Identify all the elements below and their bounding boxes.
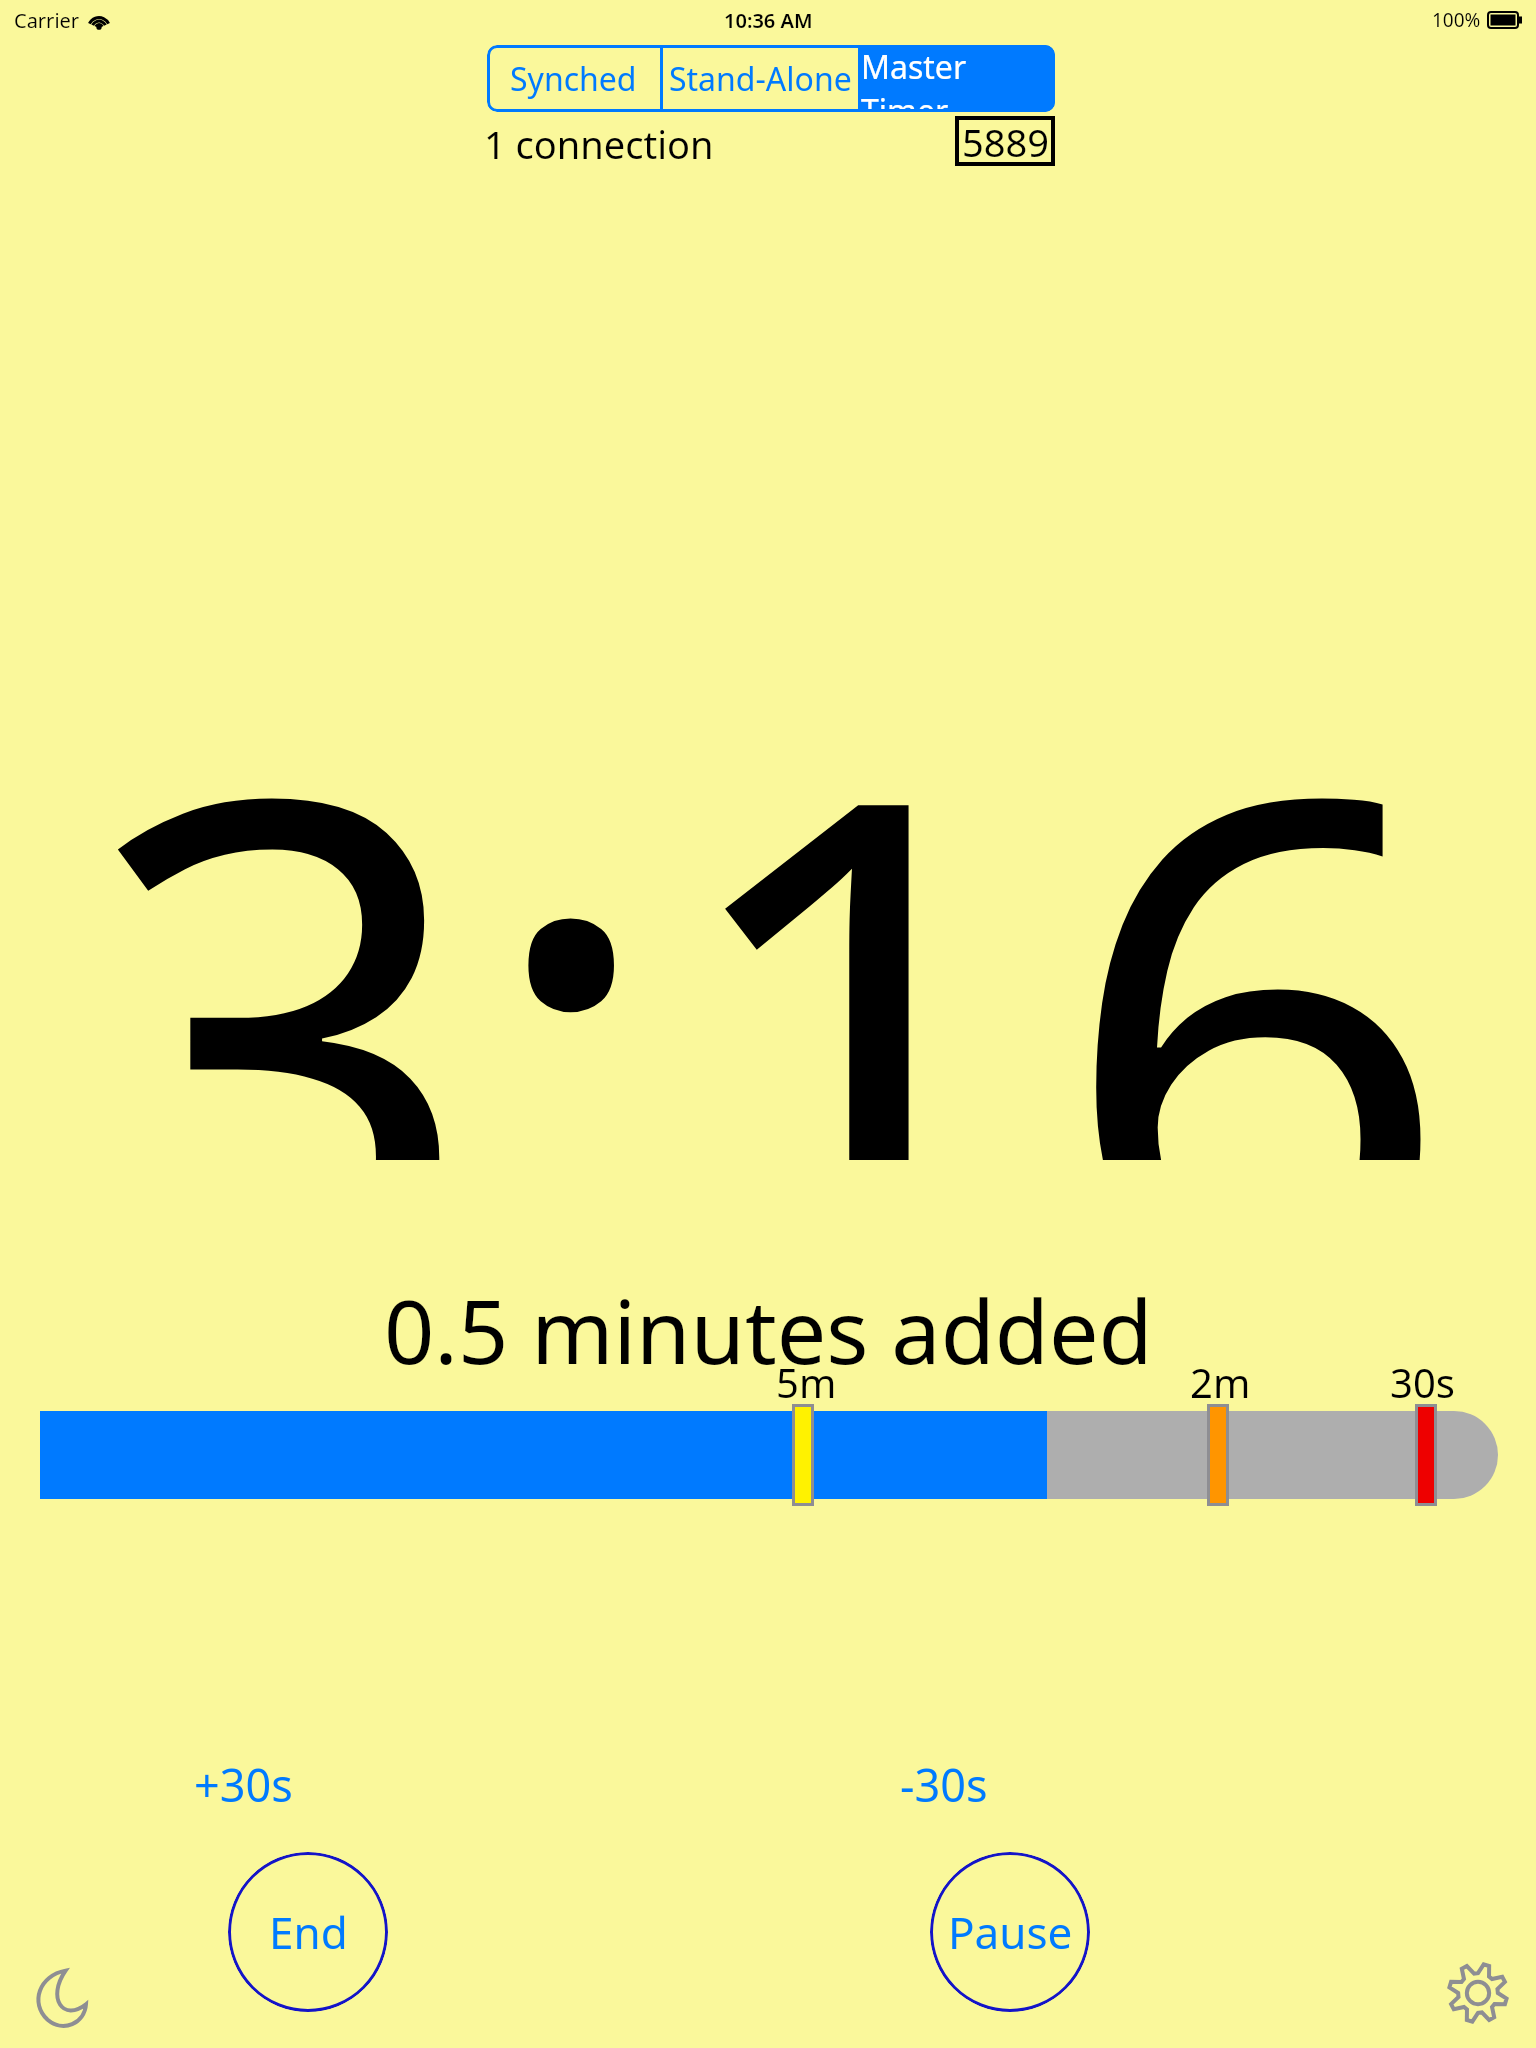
button[interactable]: +30s	[194, 1754, 293, 1815]
staticText: -30s	[900, 1754, 988, 1815]
staticText: 5m	[776, 1355, 837, 1409]
button[interactable]: Stand-Alone	[663, 45, 858, 112]
button[interactable]: Master Timer	[861, 45, 1055, 112]
button[interactable]: 5889	[955, 116, 1055, 166]
staticText: 0.5 minutes added	[384, 1270, 1153, 1390]
staticText: 3:16	[84, 560, 1453, 1160]
button[interactable]: Synched	[487, 45, 660, 112]
staticText: Stand-Alone	[669, 57, 852, 101]
staticText: 1 connection	[484, 118, 714, 170]
staticText: 10:36 AM	[724, 7, 813, 34]
staticText: End	[269, 1902, 348, 1962]
staticText: +30s	[194, 1754, 293, 1815]
button[interactable]: Night mode	[14, 1955, 98, 2039]
staticText: 100%	[1432, 7, 1481, 33]
staticText: Carrier	[14, 7, 80, 34]
staticText: 2m	[1190, 1355, 1251, 1409]
button[interactable]: Pause	[930, 1852, 1090, 2012]
button[interactable]: End	[228, 1852, 388, 2012]
staticText: 30s	[1390, 1355, 1455, 1409]
staticText: Synched	[510, 57, 637, 101]
button[interactable]: -30s	[900, 1754, 988, 1815]
button[interactable]	[0, 0, 1536, 2048]
staticText: Pause	[948, 1902, 1073, 1962]
staticText: Master Timer	[861, 45, 1055, 112]
button[interactable]: Settings	[1436, 1951, 1520, 2035]
staticText: 5889	[962, 116, 1049, 166]
